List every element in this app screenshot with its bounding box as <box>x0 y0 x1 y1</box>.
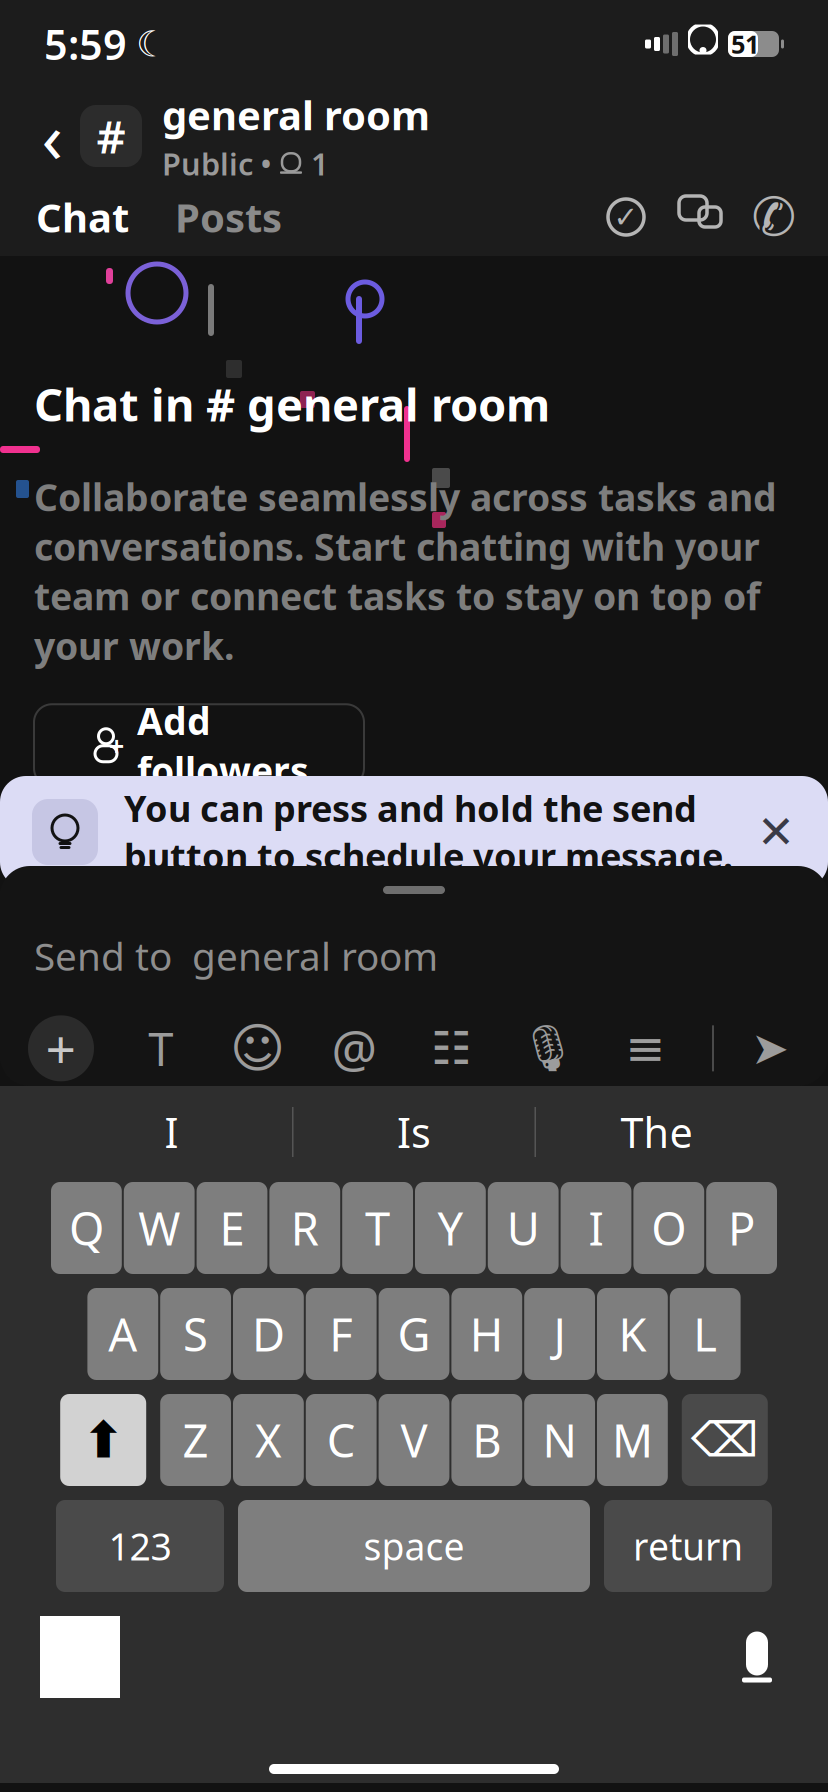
staticText: Collaborate seamlessly across tasks and … <box>34 472 777 670</box>
staticText: C <box>327 1410 356 1470</box>
button[interactable]: general room <box>142 88 485 184</box>
button[interactable]: 123 <box>56 1500 224 1592</box>
button[interactable]: J <box>524 1288 595 1380</box>
button[interactable]: C <box>306 1394 377 1486</box>
staticText: ‹ <box>41 90 62 182</box>
staticText: ✓ <box>613 200 638 234</box>
button[interactable]: Delete <box>682 1394 768 1486</box>
button[interactable]: Send <box>740 1018 800 1078</box>
staticText: L <box>693 1304 717 1364</box>
button[interactable]: T <box>342 1182 413 1274</box>
button[interactable]: P <box>706 1182 777 1274</box>
button[interactable]: + <box>34 704 364 786</box>
button[interactable]: F <box>306 1288 377 1380</box>
button[interactable]: Z <box>160 1394 231 1486</box>
staticText: + <box>45 1013 76 1084</box>
staticText: ⌫ <box>691 1413 759 1467</box>
staticText: U <box>507 1198 540 1258</box>
button[interactable]: Channel <box>80 105 142 167</box>
button[interactable]: N <box>524 1394 595 1486</box>
button[interactable]: Call <box>752 195 796 239</box>
staticText: G <box>397 1304 430 1364</box>
staticText: 5:59 <box>44 17 127 71</box>
staticText: K <box>618 1304 646 1364</box>
button[interactable]: D <box>233 1288 304 1380</box>
staticText: E <box>219 1198 244 1258</box>
button[interactable]: Add attachment <box>28 1015 94 1081</box>
button[interactable]: S <box>160 1288 231 1380</box>
button[interactable]: I <box>51 1086 292 1178</box>
button[interactable]: Chat <box>32 190 133 243</box>
staticText: • <box>261 146 271 181</box>
staticText: ⬆ <box>82 1411 124 1469</box>
button[interactable]: Dictation <box>726 1622 788 1692</box>
button[interactable]: A <box>87 1288 158 1380</box>
staticText: H <box>470 1304 504 1364</box>
staticText: S <box>183 1304 208 1364</box>
staticText: Is <box>397 1105 431 1159</box>
button[interactable]: V <box>379 1394 449 1486</box>
button[interactable]: Mention <box>325 1018 385 1078</box>
staticText: I <box>588 1198 603 1258</box>
button[interactable]: Record audio <box>518 1018 578 1078</box>
button[interactable]: Threads <box>678 195 722 239</box>
button[interactable]: space <box>238 1500 590 1592</box>
staticText: F <box>329 1304 353 1364</box>
button[interactable]: H <box>451 1288 522 1380</box>
staticText: Send to general room <box>34 930 438 981</box>
button[interactable]: E <box>197 1182 267 1274</box>
staticText: P <box>728 1198 755 1258</box>
staticText: J <box>554 1304 566 1364</box>
staticText: ✆ <box>751 187 796 247</box>
button[interactable]: U <box>488 1182 559 1274</box>
staticText: ➤ <box>751 1023 789 1074</box>
button[interactable]: W <box>124 1182 195 1274</box>
staticText: Public <box>162 143 253 184</box>
button[interactable]: Emoji <box>228 1018 288 1078</box>
staticText: A <box>108 1304 137 1364</box>
staticText: Chat <box>36 190 129 243</box>
button[interactable]: X <box>233 1394 304 1486</box>
staticText: Y <box>437 1198 463 1258</box>
button[interactable]: The <box>536 1086 777 1178</box>
staticText: T <box>365 1198 390 1258</box>
button[interactable]: R <box>269 1182 340 1274</box>
button[interactable]: G <box>379 1288 449 1380</box>
button[interactable]: M <box>597 1394 668 1486</box>
button[interactable]: L <box>670 1288 741 1380</box>
staticText: M <box>612 1410 653 1470</box>
button[interactable]: return <box>604 1500 772 1592</box>
staticText: O <box>651 1198 686 1258</box>
staticText: ☾ <box>136 24 168 64</box>
button[interactable]: Sticker <box>421 1018 481 1078</box>
button[interactable]: Formatting <box>131 1018 191 1078</box>
staticText: return <box>633 1521 743 1571</box>
staticText: N <box>543 1410 577 1470</box>
button[interactable]: Tasks <box>604 195 648 239</box>
staticText: @ <box>332 1015 378 1082</box>
button[interactable]: Posts <box>171 190 286 243</box>
staticText: 🎙 <box>519 1022 577 1074</box>
button[interactable]: List <box>615 1018 675 1078</box>
button[interactable]: Y <box>415 1182 486 1274</box>
button[interactable]: Dismiss <box>750 806 802 858</box>
staticText: I <box>164 1105 178 1159</box>
button[interactable]: Is <box>293 1086 534 1178</box>
staticText: 123 <box>108 1521 171 1571</box>
button[interactable]: B <box>451 1394 522 1486</box>
button[interactable]: I <box>561 1182 631 1274</box>
staticText: ☷ <box>431 1023 472 1074</box>
button[interactable]: Back <box>24 106 80 166</box>
staticText: V <box>400 1410 427 1470</box>
button[interactable]: Shift <box>60 1394 146 1486</box>
button[interactable]: K <box>597 1288 668 1380</box>
staticText: X <box>255 1410 282 1470</box>
staticText: D <box>252 1304 285 1364</box>
button[interactable]: O <box>633 1182 704 1274</box>
staticText: + <box>109 728 124 763</box>
staticText: 1 <box>311 143 329 184</box>
staticText: 51 <box>731 27 759 61</box>
button[interactable]: Q <box>51 1182 122 1274</box>
staticText: Q <box>69 1198 104 1258</box>
